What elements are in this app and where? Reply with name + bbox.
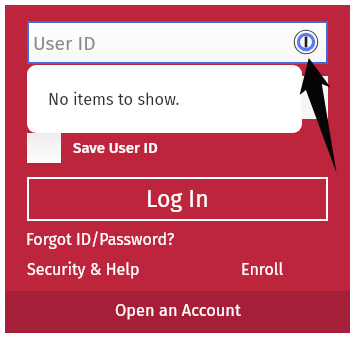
staticText: Open an Account	[115, 301, 241, 321]
staticText: Save User ID	[73, 139, 158, 157]
button[interactable]: User ID	[27, 21, 328, 64]
staticText: User ID	[33, 32, 96, 55]
staticText: No items to show.	[48, 90, 180, 110]
button[interactable]: Log In	[27, 177, 328, 221]
button[interactable]: Enroll	[241, 260, 284, 279]
button[interactable]: Save User ID	[27, 133, 158, 163]
button[interactable]: Forgot ID/Password?	[26, 230, 175, 249]
button[interactable]: No items to show.	[27, 65, 302, 133]
button[interactable]: 1Password autofill	[292, 28, 320, 56]
button[interactable]: Security & Help	[27, 260, 140, 279]
staticText: Log In	[146, 185, 209, 213]
button[interactable]: Open an Account	[5, 291, 350, 333]
